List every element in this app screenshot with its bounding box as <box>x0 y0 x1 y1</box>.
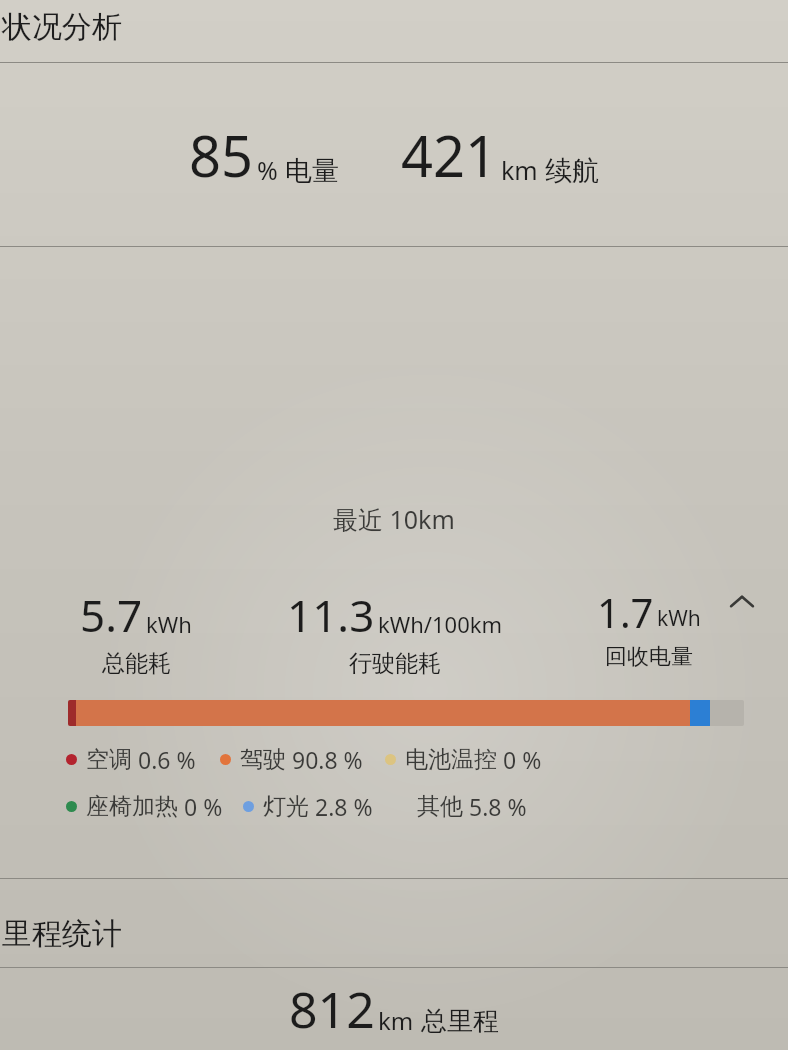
staticText: 0.6 % <box>138 744 196 775</box>
button[interactable]: 电池温控 <box>385 742 542 777</box>
staticText: 最近 10km <box>333 502 455 536</box>
staticText: 0 % <box>503 744 542 775</box>
staticText: 11.3 <box>287 585 375 645</box>
staticText: 85 <box>189 117 254 193</box>
staticText: 总能耗 <box>102 649 171 678</box>
staticText: 座椅加热 <box>86 792 178 821</box>
button[interactable]: 其他 <box>397 789 527 824</box>
staticText: 状况分析 <box>2 8 122 46</box>
staticText: 回收电量 <box>605 643 693 671</box>
staticText: 空调 <box>86 745 132 774</box>
button[interactable]: Collapse <box>716 576 768 628</box>
button[interactable] <box>68 700 744 726</box>
staticText: 其他 <box>417 792 463 821</box>
staticText: 5.7 <box>80 585 143 645</box>
staticText: km <box>378 1004 414 1037</box>
button[interactable]: 座椅加热 <box>66 789 223 824</box>
staticText: 0 % <box>184 791 223 822</box>
staticText: % <box>257 153 278 187</box>
staticText: 电池温控 <box>405 745 497 774</box>
staticText: 续航 <box>545 154 599 188</box>
staticText: 行驶能耗 <box>349 649 441 678</box>
staticText: 90.8 % <box>292 744 363 775</box>
staticText: kWh <box>146 609 192 639</box>
staticText: kWh <box>657 604 701 633</box>
button[interactable]: 灯光 <box>243 789 373 824</box>
staticText: 里程统计 <box>2 915 122 953</box>
staticText: kWh/100km <box>378 609 503 639</box>
staticText: 5.8 % <box>469 791 527 822</box>
staticText: km <box>501 153 538 187</box>
button[interactable]: 最近 10km <box>0 502 788 547</box>
button[interactable]: 驾驶 <box>220 742 363 777</box>
staticText: 总里程 <box>421 1005 499 1038</box>
staticText: 812 <box>289 975 375 1043</box>
button[interactable]: 空调 <box>66 742 196 777</box>
staticText: 421 <box>401 117 498 193</box>
staticText: 驾驶 <box>240 745 286 774</box>
staticText: 灯光 <box>263 792 309 821</box>
staticText: 2.8 % <box>315 791 373 822</box>
staticText: 电量 <box>285 154 339 188</box>
staticText: 1.7 <box>597 585 654 639</box>
